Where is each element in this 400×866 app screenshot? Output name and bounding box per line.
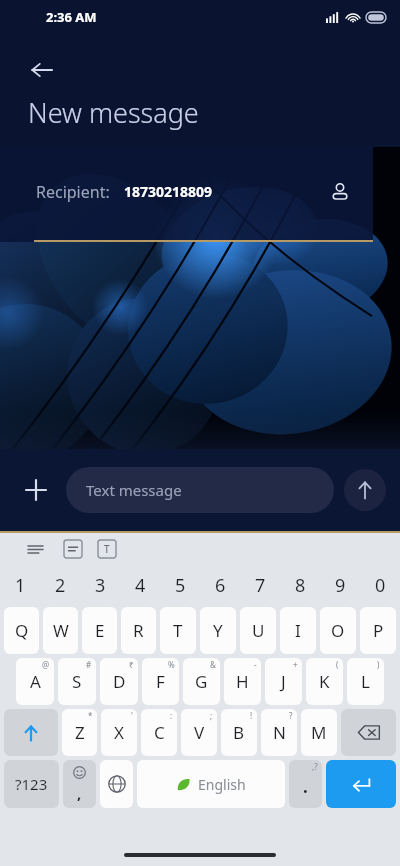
staticText: F <box>156 670 165 693</box>
staticText: New message <box>28 94 199 131</box>
staticText: % <box>168 659 175 670</box>
button[interactable]: I <box>280 607 316 654</box>
button[interactable]: Clipboard <box>62 538 84 560</box>
button[interactable]: P <box>360 607 396 654</box>
button[interactable]: ,? <box>289 760 322 808</box>
button[interactable]: S <box>58 658 96 705</box>
staticText: X <box>114 721 124 744</box>
staticText: U <box>252 619 265 642</box>
staticText: 0 <box>375 573 386 598</box>
staticText: * <box>88 710 93 721</box>
button[interactable]: 4 <box>120 565 160 605</box>
button[interactable]: Y <box>200 607 236 654</box>
staticText: 2:36 AM <box>46 8 97 26</box>
button[interactable]: Shift <box>4 709 58 756</box>
staticText: . <box>303 775 308 798</box>
staticText: K <box>319 670 330 693</box>
button[interactable]: C <box>141 709 177 756</box>
staticText: T <box>104 542 110 556</box>
staticText: Text message <box>86 480 182 500</box>
button[interactable]: 7 <box>240 565 280 605</box>
staticText: H <box>236 670 249 693</box>
button[interactable]: Recipient: <box>36 147 355 236</box>
button[interactable]: ?123 <box>4 760 59 808</box>
staticText: W <box>53 619 69 642</box>
button[interactable]: 9 <box>320 565 360 605</box>
button[interactable]: O <box>320 607 356 654</box>
button[interactable]: N <box>261 709 297 756</box>
staticText: 18730218809 <box>124 182 213 201</box>
button[interactable]: D <box>100 658 138 705</box>
button[interactable]: R <box>121 607 156 654</box>
button[interactable]: 1 <box>0 565 40 605</box>
staticText: G <box>195 670 208 693</box>
staticText: S <box>72 670 82 693</box>
button[interactable]: English <box>137 760 285 808</box>
button[interactable]: Back <box>26 54 58 86</box>
button[interactable]: Text settings <box>96 538 118 560</box>
button[interactable]: L <box>347 658 384 705</box>
staticText: , <box>77 783 82 803</box>
staticText: ' <box>131 710 133 721</box>
button[interactable]: K <box>306 658 343 705</box>
button[interactable]: E <box>82 607 117 654</box>
staticText: Z <box>75 721 85 744</box>
staticText: M <box>311 721 327 744</box>
staticText: Y <box>213 619 223 642</box>
staticText: 8 <box>295 573 306 598</box>
staticText: ; <box>210 710 213 721</box>
button[interactable]: Enter <box>326 760 396 808</box>
button[interactable]: T <box>160 607 196 654</box>
button[interactable]: Add attachment <box>14 468 58 512</box>
button[interactable]: Backspace <box>341 709 396 756</box>
button[interactable]: Emoji and comma <box>63 760 96 808</box>
staticText: English <box>198 775 246 794</box>
button[interactable]: M <box>301 709 337 756</box>
staticText: 5 <box>175 573 186 598</box>
button[interactable]: Z <box>62 709 97 756</box>
staticText: ₹ <box>129 659 134 670</box>
button[interactable]: 3 <box>80 565 120 605</box>
staticText: & <box>210 659 216 670</box>
staticText: E <box>95 619 105 642</box>
button[interactable]: A <box>16 658 54 705</box>
staticText: 1 <box>15 573 26 598</box>
staticText: J <box>281 670 286 693</box>
button[interactable]: 2 <box>40 565 80 605</box>
button[interactable]: X <box>101 709 137 756</box>
button[interactable]: Menu <box>20 534 50 564</box>
staticText: ) <box>377 659 380 670</box>
staticText: C <box>154 721 165 744</box>
staticText: D <box>113 670 126 693</box>
button[interactable]: 0 <box>360 565 400 605</box>
button[interactable]: Change language <box>100 760 133 808</box>
button[interactable]: Q <box>4 607 39 654</box>
staticText: ,? <box>312 761 318 772</box>
staticText: 6 <box>215 573 226 598</box>
button[interactable]: F <box>142 658 179 705</box>
button[interactable]: V <box>181 709 217 756</box>
button[interactable]: H <box>224 658 261 705</box>
button[interactable]: 5 <box>160 565 200 605</box>
button[interactable]: B <box>221 709 257 756</box>
staticText: O <box>331 619 345 642</box>
staticText: L <box>361 670 370 693</box>
button[interactable]: G <box>183 658 220 705</box>
staticText: T <box>173 619 183 642</box>
button[interactable]: W <box>43 607 78 654</box>
staticText: V <box>194 721 205 744</box>
staticText: ?123 <box>15 774 48 794</box>
staticText: ! <box>250 710 253 721</box>
button[interactable]: U <box>240 607 276 654</box>
button[interactable]: Send <box>344 469 386 511</box>
staticText: A <box>30 670 41 693</box>
button[interactable]: Choose contact <box>325 177 355 207</box>
button[interactable]: 6 <box>200 565 240 605</box>
button[interactable]: Text message <box>66 467 334 513</box>
staticText: B <box>233 721 245 744</box>
staticText: Q <box>15 619 29 642</box>
button[interactable]: J <box>265 658 302 705</box>
button[interactable]: 8 <box>280 565 320 605</box>
staticText: 7 <box>255 573 266 598</box>
staticText: - <box>254 659 257 670</box>
